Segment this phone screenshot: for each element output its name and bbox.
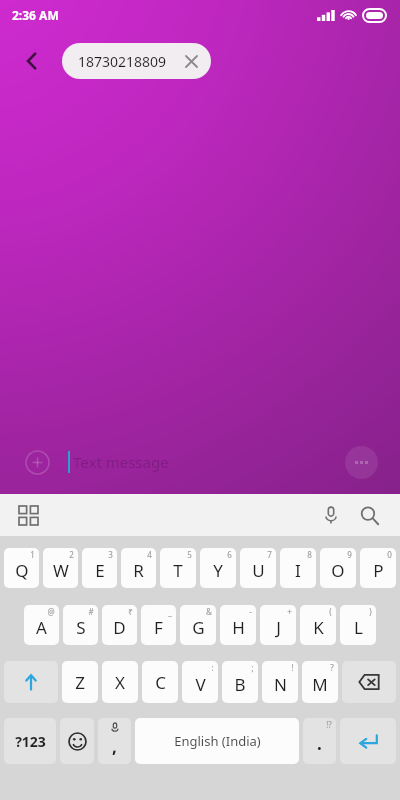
staticText: 4	[147, 549, 152, 560]
button[interactable]: Add attachment	[20, 445, 54, 479]
button[interactable]: English (India)	[135, 718, 299, 764]
staticText: 2:36 AM	[12, 7, 59, 23]
staticText: 9	[347, 549, 352, 560]
button[interactable]: 18730218809	[62, 43, 211, 79]
button[interactable]: Comma	[98, 718, 131, 764]
staticText: -	[249, 606, 252, 617]
staticText: 6	[227, 549, 232, 560]
button[interactable]: ?	[302, 661, 338, 703]
staticText: @	[47, 606, 55, 617]
staticText: T	[173, 559, 183, 582]
staticText: W	[53, 559, 69, 582]
staticText: :	[211, 662, 214, 673]
staticText: ,	[112, 735, 117, 758]
staticText: 7	[267, 549, 272, 560]
button[interactable]: Search	[350, 496, 388, 534]
staticText: D	[113, 616, 126, 639]
button[interactable]: 2	[43, 548, 78, 588]
staticText: +	[287, 606, 292, 617]
button[interactable]: :	[182, 661, 218, 703]
button[interactable]: Shift	[4, 661, 58, 703]
staticText: ?123	[15, 732, 46, 751]
staticText: I	[295, 559, 301, 582]
staticText: _	[168, 606, 172, 617]
button[interactable]: _	[141, 605, 176, 645]
button[interactable]: Z	[62, 661, 98, 703]
staticText: O	[331, 559, 345, 582]
button[interactable]: 8	[280, 548, 316, 588]
staticText: F	[154, 616, 163, 639]
staticText: Y	[213, 559, 223, 582]
staticText: ₹	[128, 606, 133, 617]
staticText: 8	[307, 549, 312, 560]
staticText: K	[313, 616, 324, 639]
staticText: 3	[108, 549, 113, 560]
staticText: B	[234, 673, 246, 696]
staticText: (	[329, 606, 332, 617]
staticText: G	[192, 616, 205, 639]
staticText: U	[252, 559, 265, 582]
button[interactable]: ?123	[4, 718, 56, 764]
staticText: !?	[326, 719, 332, 730]
button[interactable]: 3	[82, 548, 117, 588]
staticText: L	[354, 616, 363, 639]
staticText: V	[195, 673, 206, 696]
button[interactable]: Clear	[181, 51, 201, 71]
button[interactable]: #	[63, 605, 98, 645]
staticText: 2	[69, 549, 74, 560]
staticText: ;	[251, 662, 254, 673]
staticText: H	[232, 616, 245, 639]
staticText: ?	[330, 662, 334, 673]
staticText: R	[133, 559, 144, 582]
button[interactable]: ;	[222, 661, 258, 703]
staticText: 0	[387, 549, 392, 560]
button[interactable]: (	[300, 605, 336, 645]
staticText: Z	[75, 671, 85, 694]
staticText: &	[206, 606, 212, 617]
button[interactable]: C	[142, 661, 178, 703]
button[interactable]: Voice input	[312, 496, 350, 534]
staticText: !	[291, 662, 294, 673]
button[interactable]: Back	[12, 41, 52, 81]
button[interactable]: &	[180, 605, 216, 645]
button[interactable]: More options	[345, 446, 378, 479]
staticText: S	[76, 616, 86, 639]
staticText: J	[276, 616, 281, 639]
button[interactable]: Emoji	[60, 718, 94, 764]
button[interactable]: +	[260, 605, 296, 645]
staticText: #	[88, 606, 94, 617]
staticText: M	[312, 673, 328, 696]
staticText: P	[373, 559, 384, 582]
staticText: English (India)	[174, 732, 261, 750]
button[interactable]: ₹	[102, 605, 137, 645]
staticText: N	[274, 673, 287, 696]
button[interactable]: 7	[240, 548, 276, 588]
staticText: 5	[187, 549, 192, 560]
staticText: Q	[15, 559, 29, 582]
button[interactable]: -	[220, 605, 256, 645]
button[interactable]: Backspace	[342, 661, 396, 703]
button[interactable]: X	[102, 661, 138, 703]
staticText: )	[369, 606, 372, 617]
staticText: E	[95, 559, 105, 582]
staticText: Text message	[73, 452, 169, 472]
button[interactable]: 6	[200, 548, 236, 588]
button[interactable]: 4	[121, 548, 156, 588]
button[interactable]: 1	[4, 548, 39, 588]
button[interactable]: 5	[160, 548, 196, 588]
staticText: 18730218809	[78, 52, 167, 71]
button[interactable]: )	[340, 605, 376, 645]
staticText: A	[36, 616, 47, 639]
staticText: 1	[30, 549, 35, 560]
button[interactable]: 0	[360, 548, 396, 588]
button[interactable]: Enter	[340, 718, 396, 764]
staticText: X	[115, 671, 125, 694]
button[interactable]: !	[262, 661, 298, 703]
staticText: .	[317, 732, 322, 755]
staticText: C	[155, 671, 166, 694]
button[interactable]: Keyboard menu	[11, 498, 45, 532]
button[interactable]: !?	[303, 718, 336, 764]
button[interactable]: 9	[320, 548, 356, 588]
button[interactable]: @	[24, 605, 59, 645]
